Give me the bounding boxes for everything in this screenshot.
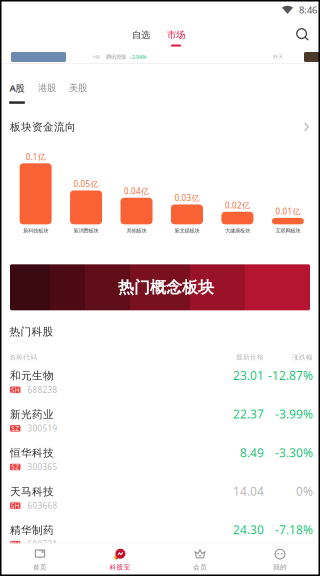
staticText: -2.94% [130, 53, 146, 61]
staticText: 昨天 [273, 54, 283, 60]
staticText: 我的 [273, 563, 287, 571]
button[interactable]: 首页 [0, 543, 80, 576]
staticText: 0.01亿 [275, 206, 300, 217]
staticText: 0.02亿 [225, 200, 250, 211]
button[interactable]: 和元生物 [0, 363, 320, 402]
staticText: 603668 [27, 500, 57, 511]
staticText: 新文娱板块 [174, 227, 199, 234]
staticText: 自选 [132, 29, 150, 41]
staticText: -3.99% [275, 406, 313, 422]
staticText: 热门概念板块 [118, 277, 214, 297]
button[interactable]: 我的 [240, 543, 320, 576]
staticText: SZ [11, 463, 19, 471]
button[interactable]: 自选 [132, 20, 150, 48]
staticText: 科股宝 [109, 563, 130, 571]
staticText: 新消费板块 [74, 227, 99, 234]
staticText: 14.04 [233, 483, 264, 499]
staticText: SH [11, 540, 20, 549]
button[interactable]: 港股 [38, 83, 56, 104]
staticText: 其他板块 [126, 227, 146, 234]
button[interactable]: 恒华科技 [0, 440, 320, 479]
staticText: -7.18% [275, 522, 313, 538]
staticText: 首页 [33, 563, 47, 571]
staticText: 恒华科技 [10, 446, 54, 459]
staticText: 大健康板块 [225, 227, 250, 234]
button[interactable]: 美股 [69, 83, 87, 104]
button[interactable]: 市场 [167, 20, 185, 48]
button[interactable]: 热门概念板块 [0, 234, 320, 310]
button[interactable]: A股 [9, 83, 25, 104]
staticText: A股 [9, 82, 24, 94]
staticText: SH [11, 501, 20, 510]
staticText: 新光药业 [10, 408, 54, 421]
staticText: SZ [11, 424, 19, 433]
staticText: 24.30 [233, 522, 264, 538]
staticText: 0.05亿 [74, 179, 99, 189]
staticText: 市场 [167, 29, 185, 41]
staticText: 美股 [69, 82, 87, 94]
staticText: 0.04亿 [124, 186, 149, 197]
staticText: 热门科股 [10, 325, 54, 338]
button[interactable]: 板块资金流向 [0, 107, 320, 139]
staticText: 互联网板块 [275, 227, 300, 234]
button[interactable]: 天马科技 [0, 479, 320, 518]
staticText: 腾讯控股 [106, 54, 126, 60]
staticText: 0.1亿 [26, 151, 46, 162]
staticText: 688238 [27, 384, 57, 395]
staticText: 和元生物 [10, 369, 54, 382]
staticText: 新科技板块 [23, 227, 48, 234]
staticText: 会员 [193, 563, 207, 571]
staticText: HK [93, 53, 100, 61]
staticText: 300365 [27, 462, 57, 472]
staticText: SH [11, 385, 20, 394]
staticText: 0% [296, 483, 313, 499]
staticText: 600721 [27, 539, 57, 549]
staticText: 板块资金流向 [10, 120, 76, 133]
button[interactable]: 新光药业 [0, 402, 320, 440]
button[interactable]: 搜索 [296, 20, 309, 48]
staticText: 0.03亿 [174, 193, 199, 203]
staticText: 天马科技 [10, 485, 54, 498]
staticText: 最新价格 [236, 353, 264, 361]
staticText: -12.87% [268, 367, 313, 383]
staticText: 名称代码 [9, 353, 37, 361]
staticText: 8.49 [240, 444, 264, 460]
button[interactable]: 精华制药 [0, 518, 320, 556]
button[interactable]: 会员 [160, 543, 240, 576]
staticText: 22.37 [233, 406, 264, 422]
staticText: 23.01 [233, 367, 264, 383]
button[interactable]: 科股宝 [80, 543, 160, 576]
staticText: 港股 [38, 82, 56, 94]
staticText: 涨跌幅 [292, 353, 313, 361]
staticText: -3.30% [275, 444, 313, 460]
staticText: 300519 [27, 423, 57, 434]
staticText: 8:46 [299, 4, 317, 16]
staticText: 精华制药 [10, 524, 54, 537]
